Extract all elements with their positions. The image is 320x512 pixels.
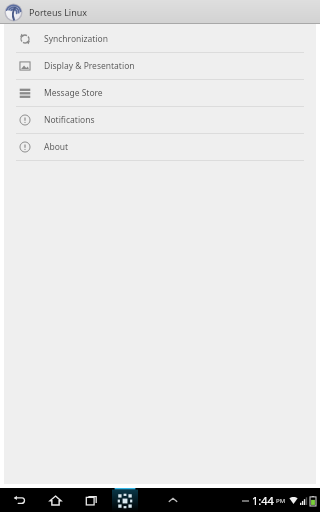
staticText: Notifications <box>44 114 95 126</box>
button[interactable]: Recent apps <box>78 488 104 512</box>
staticText: Display & Presentation <box>44 60 135 72</box>
staticText: 1:44 <box>252 493 274 508</box>
button[interactable]: Back <box>6 488 32 512</box>
button[interactable]: Home <box>42 488 68 512</box>
staticText: Message Store <box>44 87 103 99</box>
staticText: About <box>44 141 69 153</box>
button[interactable]: About <box>4 134 316 160</box>
staticText: PM <box>276 497 286 505</box>
button[interactable]: Notifications <box>4 107 316 133</box>
button[interactable]: Synchronization <box>4 26 316 52</box>
staticText: Synchronization <box>44 33 108 45</box>
staticText: Porteus Linux <box>29 6 88 18</box>
button[interactable]: Screenshot <box>112 488 138 512</box>
button[interactable]: Display & Presentation <box>4 53 316 79</box>
button[interactable]: Message Store <box>4 80 316 106</box>
button[interactable]: Expand <box>160 488 186 512</box>
